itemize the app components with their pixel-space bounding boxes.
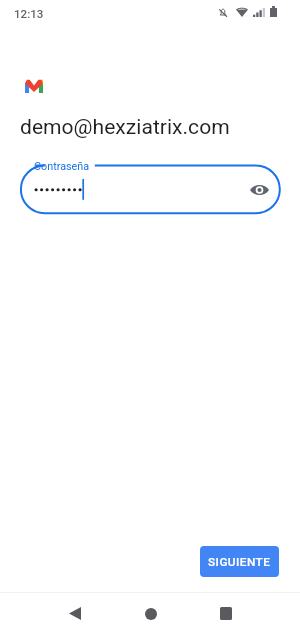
- button[interactable]: Atrás: [51, 596, 98, 631]
- staticText: demo@hexziatrix.com: [20, 114, 230, 139]
- button[interactable]: Contraseña: [19, 160, 281, 218]
- button[interactable]: Inicio: [127, 596, 174, 631]
- button[interactable]: Mostrar contraseña: [246, 177, 272, 203]
- staticText: 12:13: [14, 7, 44, 21]
- button[interactable]: SIGUIENTE: [200, 546, 279, 577]
- button[interactable]: Recientes: [202, 596, 249, 631]
- staticText: Contraseña: [34, 160, 90, 173]
- staticText: SIGUIENTE: [208, 555, 271, 569]
